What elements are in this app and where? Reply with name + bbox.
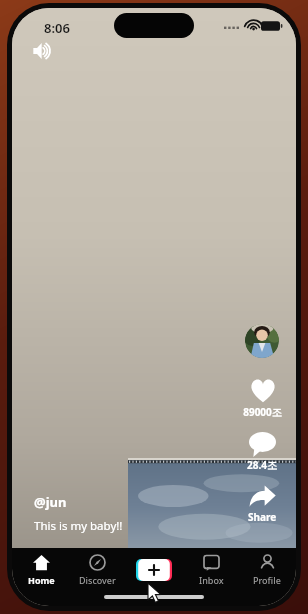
- staticText: 8:06: [44, 19, 70, 37]
- staticText: 89000조: [243, 405, 282, 419]
- button[interactable]: Profile photo: [245, 324, 279, 358]
- button[interactable]: Share: [248, 485, 277, 524]
- staticText: Home: [28, 574, 55, 586]
- button[interactable]: Inbox: [184, 548, 238, 592]
- staticText: Discover: [79, 574, 116, 586]
- button[interactable]: Profile: [240, 548, 294, 592]
- button[interactable]: Home: [14, 548, 68, 592]
- button[interactable]: Like: [243, 378, 282, 419]
- staticText: This is my baby!!: [34, 518, 123, 534]
- button[interactable]: Comments: [247, 432, 277, 472]
- button[interactable]: Create: [126, 548, 182, 592]
- button[interactable]: @jun: [34, 493, 67, 511]
- button[interactable]: Discover: [70, 548, 124, 592]
- staticText: Profile: [253, 574, 281, 586]
- staticText: 28.4조: [247, 458, 277, 472]
- button[interactable]: Mute: [26, 34, 60, 68]
- staticText: Inbox: [199, 574, 224, 586]
- staticText: Share: [248, 510, 277, 524]
